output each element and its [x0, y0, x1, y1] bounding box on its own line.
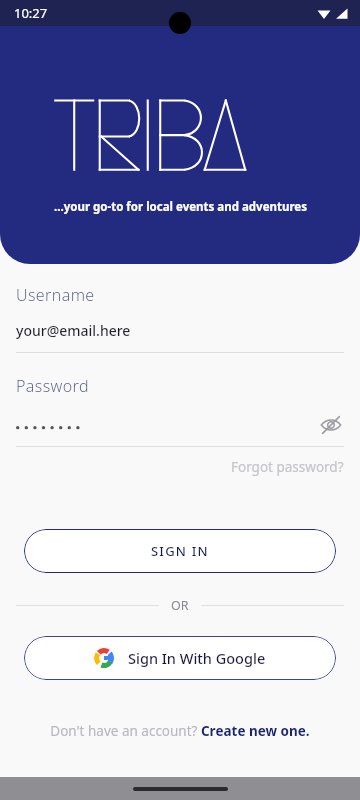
button[interactable] — [16, 419, 318, 431]
staticText: SIGN IN — [151, 542, 209, 560]
staticText: Forgot password? — [231, 458, 344, 476]
button[interactable]: Show password — [318, 412, 344, 438]
staticText: Don't have an account? Create new one. — [50, 722, 310, 740]
staticText: ...your go-to for local events and adven… — [54, 199, 307, 215]
button[interactable]: Forgot password? — [231, 458, 344, 476]
staticText: 10:27 — [14, 4, 48, 22]
staticText: Password — [16, 375, 89, 397]
button[interactable]: Sign In With Google — [24, 636, 336, 680]
staticText: Username — [16, 284, 95, 306]
button[interactable]: SIGN IN — [24, 529, 336, 573]
button[interactable]: Don't have an account? Create new one. — [16, 722, 344, 740]
button[interactable]: your@email.here — [16, 321, 344, 340]
staticText: Sign In With Google — [128, 648, 266, 668]
staticText: your@email.here — [16, 321, 131, 340]
staticText: OR — [171, 597, 189, 614]
